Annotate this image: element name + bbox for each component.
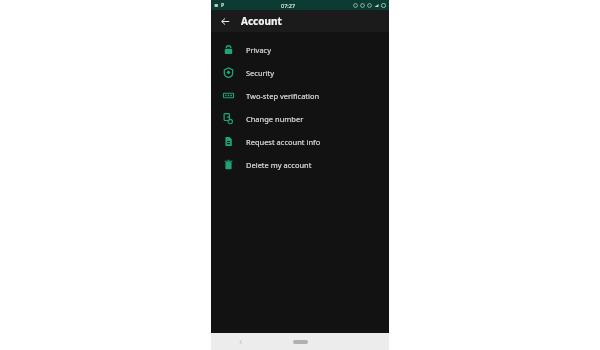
staticText: Change number [246, 114, 304, 124]
staticText: Account [241, 14, 282, 28]
button[interactable]: Request account info [211, 130, 389, 153]
button[interactable]: Home [271, 333, 330, 350]
button[interactable]: Back [217, 13, 233, 29]
button[interactable]: Two-step verification [211, 84, 389, 107]
staticText: Two-step verification [246, 91, 320, 101]
button[interactable]: Security [211, 61, 389, 84]
staticText: Privacy [246, 45, 272, 55]
staticText: P [221, 2, 225, 9]
staticText: Delete my account [246, 160, 312, 170]
button[interactable]: Delete my account [211, 153, 389, 176]
button[interactable]: Change number [211, 107, 389, 130]
button[interactable]: Privacy [211, 38, 389, 61]
staticText: 07:27 [281, 2, 296, 9]
staticText: Request account info [246, 137, 321, 147]
staticText: Security [246, 68, 275, 78]
